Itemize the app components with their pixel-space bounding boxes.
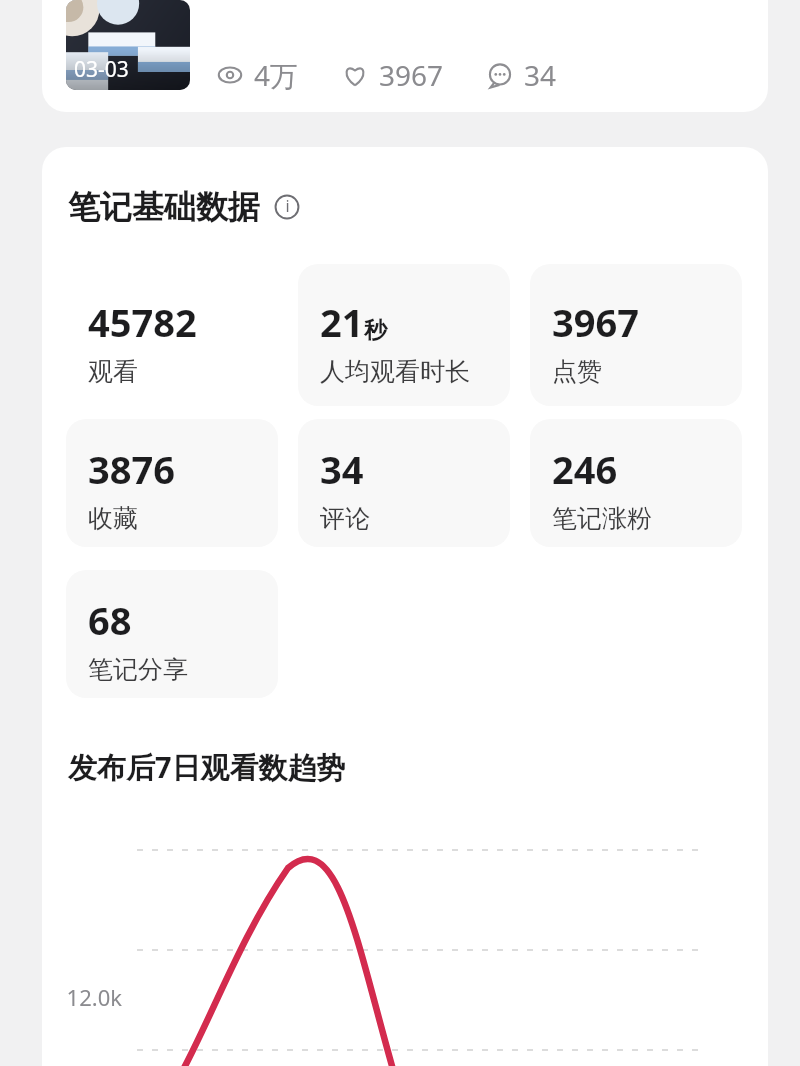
button[interactable]: 03-03 — [42, 0, 768, 112]
button[interactable]: 数据说明 — [274, 194, 300, 220]
staticText: 秒 — [364, 316, 387, 345]
staticText: 03-03 — [74, 55, 129, 84]
staticText: 3967 — [379, 56, 444, 94]
button[interactable]: 45782 — [66, 264, 278, 406]
staticText: 21 — [320, 296, 364, 348]
button[interactable]: 68 — [66, 570, 278, 698]
staticText: 发布后7日观看数趋势 — [68, 747, 346, 787]
staticText: 34 — [320, 443, 364, 495]
staticText: i — [285, 195, 290, 217]
staticText: 34 — [524, 56, 557, 94]
staticText: 笔记分享 — [88, 654, 188, 685]
button[interactable]: 3967 — [530, 264, 742, 406]
button[interactable]: 21 — [298, 264, 510, 406]
staticText: 3876 — [88, 443, 175, 495]
staticText: 246 — [552, 443, 618, 495]
staticText: 4万 — [254, 56, 299, 94]
staticText: 12.0k — [66, 982, 122, 1012]
button[interactable]: 246 — [530, 419, 742, 547]
staticText: 点赞 — [552, 356, 602, 387]
button[interactable]: 3967 — [341, 56, 444, 94]
staticText: 评论 — [320, 503, 370, 534]
staticText: 笔记基础数据 — [68, 187, 260, 227]
button[interactable]: 笔记基础数据 — [68, 187, 300, 227]
button[interactable]: 3876 — [66, 419, 278, 547]
staticText: 人均观看时长 — [320, 356, 470, 387]
staticText: 笔记涨粉 — [552, 503, 652, 534]
staticText: 观看 — [88, 356, 138, 387]
staticText: 68 — [88, 594, 132, 646]
button[interactable]: 34 — [486, 56, 557, 94]
staticText: 45782 — [88, 296, 197, 348]
staticText: 3967 — [552, 296, 639, 348]
button[interactable]: 34 — [298, 419, 510, 547]
staticText: 收藏 — [88, 503, 138, 534]
button[interactable]: 4万 — [216, 56, 299, 94]
